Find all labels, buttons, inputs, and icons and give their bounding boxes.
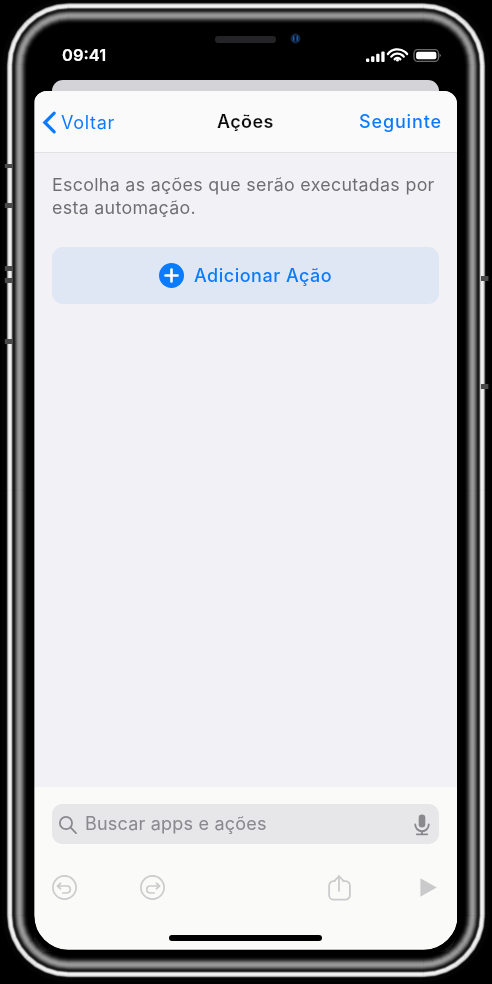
staticText: Escolha as ações que serão executadas po… bbox=[52, 174, 441, 219]
button[interactable]: Run bbox=[407, 868, 447, 906]
button[interactable]: Share bbox=[319, 868, 359, 906]
button[interactable]: Adicionar Ação bbox=[52, 247, 439, 304]
button[interactable]: Seguinte bbox=[355, 105, 446, 139]
staticText: Seguinte bbox=[359, 111, 442, 133]
button[interactable]: Buscar apps e ações bbox=[52, 804, 439, 844]
button[interactable]: Redo bbox=[132, 868, 172, 906]
staticText: 09:41 bbox=[62, 45, 107, 65]
button[interactable]: Undo bbox=[44, 868, 84, 906]
staticText: Buscar apps e ações bbox=[85, 813, 267, 835]
staticText: Voltar bbox=[61, 112, 115, 134]
staticText: Ações bbox=[217, 111, 274, 133]
button[interactable]: Voltar bbox=[38, 105, 120, 140]
staticText: Adicionar Ação bbox=[194, 265, 333, 287]
